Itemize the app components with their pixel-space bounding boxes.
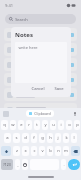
- staticText: k: [65, 135, 68, 141]
- button[interactable]: [4, 58, 77, 71]
- button[interactable]: s: [13, 133, 20, 143]
- button[interactable]: h: [47, 133, 53, 143]
- button[interactable]: [4, 103, 77, 116]
- button[interactable]: j: [55, 133, 61, 143]
- staticText: m: [64, 148, 68, 154]
- button[interactable]: k: [63, 133, 69, 143]
- staticText: o: [68, 122, 71, 128]
- staticText: v: [41, 148, 44, 154]
- staticText: c: [33, 148, 36, 154]
- button[interactable]: [4, 88, 77, 101]
- button[interactable]: a: [4, 133, 11, 143]
- button[interactable]: [4, 118, 77, 131]
- button[interactable]: p: [74, 120, 80, 130]
- button[interactable]: Search: [5, 14, 76, 24]
- button[interactable]: z: [13, 146, 20, 156]
- button[interactable]: l: [71, 133, 77, 143]
- staticText: t: [36, 122, 38, 128]
- button[interactable]: u: [50, 120, 56, 130]
- button[interactable]: Shift: [1, 146, 11, 156]
- staticText: p: [76, 122, 79, 128]
- button[interactable]: w: [10, 120, 16, 130]
- staticText: Clipboard: [34, 111, 51, 116]
- staticText: Search: [15, 17, 28, 22]
- staticText: Cancel: [31, 86, 45, 92]
- staticText: u: [52, 122, 55, 128]
- button[interactable]: Cancel: [28, 85, 48, 93]
- staticText: s: [15, 135, 18, 141]
- staticText: ,: [17, 162, 19, 168]
- staticText: g: [41, 135, 44, 141]
- button[interactable]: i: [58, 120, 64, 130]
- button[interactable]: Emoji: [22, 159, 28, 170]
- button[interactable]: [4, 28, 77, 41]
- button[interactable]: write here: [15, 42, 67, 83]
- staticText: q: [3, 122, 6, 128]
- staticText: ?123: [3, 162, 11, 167]
- button[interactable]: Backspace: [71, 146, 80, 156]
- staticText: f: [33, 135, 35, 141]
- staticText: .: [63, 162, 65, 168]
- button[interactable]: [4, 43, 77, 56]
- button[interactable]: t: [34, 120, 40, 130]
- staticText: 9:41: [5, 3, 13, 8]
- staticText: e: [20, 122, 23, 128]
- staticText: i: [60, 122, 62, 128]
- button[interactable]: g: [39, 133, 45, 143]
- button[interactable]: Clipboard: [26, 110, 54, 117]
- staticText: z: [16, 148, 18, 154]
- button[interactable]: r: [26, 120, 32, 130]
- button[interactable]: c: [31, 146, 37, 156]
- staticText: x: [24, 148, 27, 154]
- button[interactable]: q: [1, 120, 8, 130]
- button[interactable]: e: [18, 120, 24, 130]
- staticText: j: [57, 135, 59, 141]
- button[interactable]: ,: [15, 159, 20, 170]
- button[interactable]: y: [42, 120, 48, 130]
- button[interactable]: m: [63, 146, 69, 156]
- staticText: b: [49, 148, 52, 154]
- button[interactable]: v: [39, 146, 45, 156]
- button[interactable]: [4, 73, 77, 86]
- staticText: write here: [18, 45, 38, 50]
- staticText: l: [73, 135, 75, 141]
- button[interactable]: b: [47, 146, 53, 156]
- button[interactable]: x: [22, 146, 29, 156]
- button[interactable]: f: [31, 133, 37, 143]
- button[interactable]: .: [61, 159, 66, 170]
- button[interactable]: d: [22, 133, 29, 143]
- staticText: y: [44, 122, 47, 128]
- staticText: Save: [54, 86, 64, 92]
- button[interactable]: n: [55, 146, 61, 156]
- staticText: h: [49, 135, 52, 141]
- button[interactable]: Enter: [68, 159, 80, 170]
- button[interactable]: ?123: [1, 159, 13, 170]
- button[interactable]: Voice input: [72, 111, 78, 117]
- staticText: a: [6, 135, 9, 141]
- staticText: n: [57, 148, 60, 154]
- button[interactable]: Save: [51, 85, 67, 93]
- button[interactable]: o: [66, 120, 72, 130]
- staticText: r: [28, 122, 30, 128]
- staticText: d: [24, 135, 27, 141]
- staticText: w: [11, 122, 15, 128]
- staticText: Notes: [15, 31, 33, 39]
